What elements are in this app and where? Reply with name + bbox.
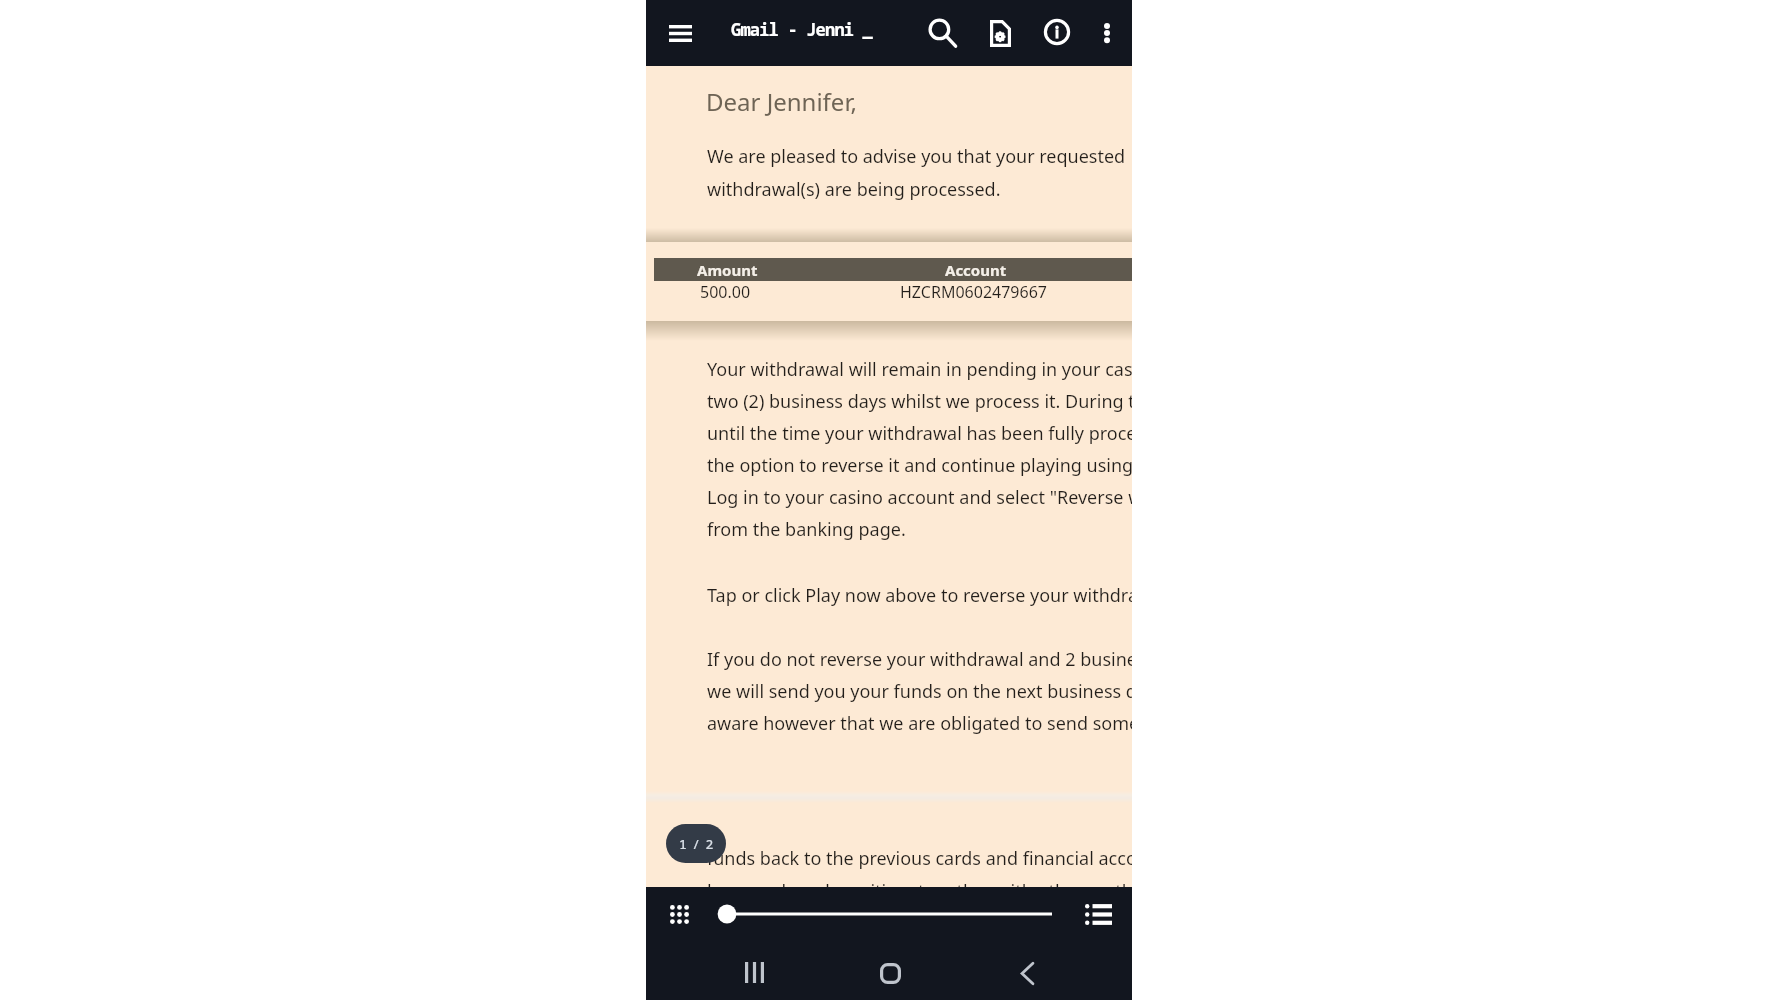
button[interactable]: Menu <box>658 11 702 55</box>
staticText: funds back to the previous cards and fin… <box>707 846 1132 871</box>
staticText: Your withdrawal will remain in pending i… <box>707 357 1132 382</box>
staticText: If you do not reverse your withdrawal an… <box>707 647 1132 672</box>
staticText: HZCRM0602479667 <box>900 281 1047 303</box>
button[interactable]: Back <box>1001 947 1053 999</box>
staticText: two (2) business days whilst we process … <box>707 389 1132 414</box>
staticText: from the banking page. <box>707 517 906 542</box>
staticText: we will send you your funds on the next … <box>707 679 1132 704</box>
staticText: Amount <box>697 260 758 280</box>
button[interactable]: Search <box>921 11 965 55</box>
button[interactable]: Info <box>1035 10 1079 54</box>
staticText: aware however that we are obligated to s… <box>707 711 1132 736</box>
button[interactable]: Page slider <box>706 893 1072 935</box>
staticText: Log in to your casino account and select… <box>707 485 1132 510</box>
staticText: until the time your withdrawal has been … <box>707 421 1132 446</box>
staticText: by you when depositing, together with ot… <box>707 879 1132 904</box>
staticText: withdrawal(s) are being processed. <box>707 177 1001 202</box>
staticText: the option to reverse it and continue pl… <box>707 453 1132 478</box>
staticText: Account <box>945 260 1007 280</box>
staticText: Gmail - Jenni _ <box>731 18 872 41</box>
button[interactable]: 1 / 2 <box>666 824 726 863</box>
staticText: 1 / 2 <box>679 835 713 853</box>
staticText: 500.00 <box>700 281 751 303</box>
button[interactable]: Outline <box>1076 892 1121 937</box>
staticText: Dear Jennifer, <box>706 85 857 118</box>
button[interactable]: Recent apps <box>728 946 780 998</box>
button[interactable]: More options <box>1085 11 1129 55</box>
button[interactable]: Home <box>864 947 916 999</box>
button[interactable]: Page thumbnails <box>657 892 702 937</box>
staticText: We are pleased to advise you that your r… <box>707 144 1126 169</box>
button[interactable]: Document settings <box>978 11 1022 55</box>
staticText: Tap or click Play now above to reverse y… <box>707 583 1132 608</box>
